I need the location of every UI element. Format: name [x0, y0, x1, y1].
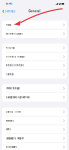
staticText: Background App Refresh	[6, 96, 30, 99]
staticText: Settings	[5, 10, 15, 13]
button[interactable]: Background App Refresh	[2, 93, 67, 102]
staticText: About	[6, 23, 12, 26]
staticText: Software Update	[6, 32, 23, 35]
button[interactable]: Dictionary	[2, 143, 67, 150]
button[interactable]: Date & Time	[2, 107, 67, 116]
button[interactable]: Settings	[0, 8, 15, 14]
button[interactable]: Language & Region	[2, 134, 67, 143]
button[interactable]: Fonts	[2, 125, 67, 134]
staticText: Language & Region	[6, 137, 24, 140]
staticText: iPhone Storage	[6, 87, 20, 90]
staticText: AirPlay & Handoff	[6, 55, 26, 58]
button[interactable]: Picture in Picture	[2, 61, 67, 70]
button[interactable]: Software Update	[2, 29, 67, 38]
staticText: Picture in Picture	[6, 64, 24, 67]
staticText: Keyboard	[6, 119, 14, 122]
staticText: AirDrop	[6, 46, 15, 49]
button[interactable]: AirDrop	[2, 43, 67, 52]
button[interactable]: iPhone Storage	[2, 84, 67, 93]
staticText: CarPlay	[6, 73, 14, 76]
staticText: Date & Time	[6, 110, 21, 113]
staticText: Dictionary	[6, 146, 17, 148]
staticText: 9:41	[6, 2, 12, 5]
button[interactable]: CarPlay	[2, 70, 67, 79]
staticText: Fonts	[6, 128, 11, 131]
button[interactable]: AirPlay & Handoff	[2, 52, 67, 61]
button[interactable]: About	[2, 20, 67, 29]
button[interactable]: Keyboard	[2, 116, 67, 125]
staticText: General	[28, 10, 40, 13]
